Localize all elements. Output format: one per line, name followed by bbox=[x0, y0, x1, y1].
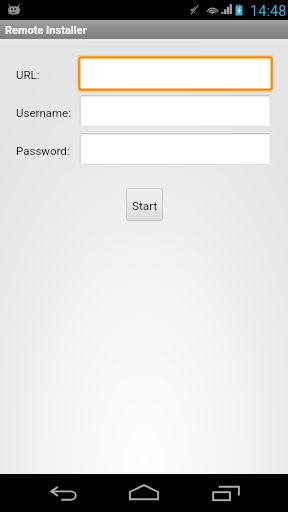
staticText: URL: bbox=[16, 68, 40, 81]
staticText: Remote Installer bbox=[5, 24, 87, 37]
button[interactable]: Recent apps bbox=[202, 474, 250, 512]
button[interactable] bbox=[78, 56, 273, 91]
button[interactable] bbox=[78, 132, 273, 167]
staticText: Password: bbox=[16, 144, 70, 157]
staticText: 14:48 bbox=[250, 2, 287, 19]
button[interactable] bbox=[78, 94, 273, 129]
button[interactable]: Back bbox=[40, 474, 88, 512]
staticText: Username: bbox=[16, 106, 71, 119]
button[interactable]: Start bbox=[126, 188, 163, 221]
staticText: Start bbox=[132, 199, 158, 213]
button[interactable]: Home bbox=[120, 474, 168, 512]
